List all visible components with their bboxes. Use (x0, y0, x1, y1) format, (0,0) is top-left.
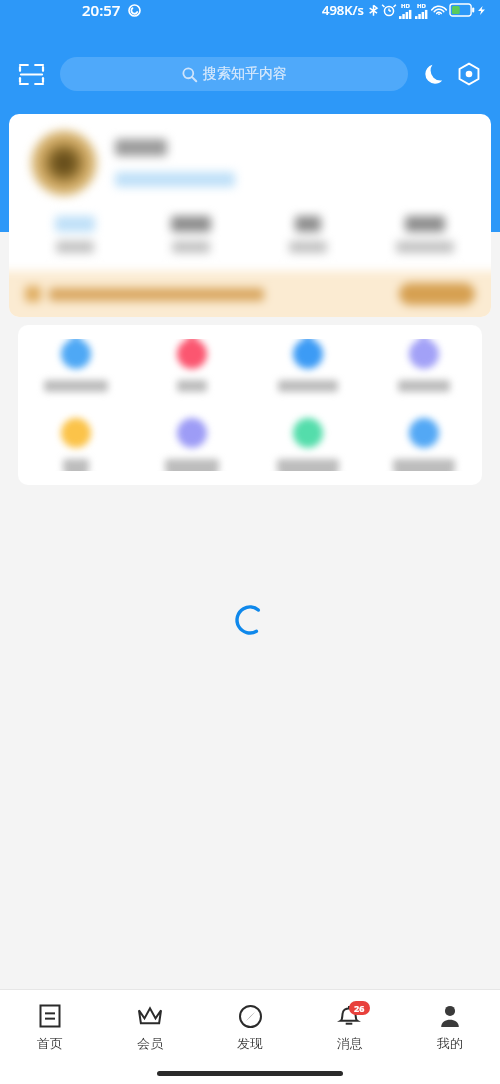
staticText: 20:57 (82, 0, 121, 20)
staticText: 消息 (337, 1035, 363, 1051)
button[interactable] (134, 418, 250, 471)
button[interactable]: 会员 (100, 1002, 200, 1051)
staticText: 会员 (137, 1035, 163, 1051)
staticText: 发现 (237, 1035, 263, 1051)
button[interactable] (366, 216, 483, 253)
staticText: 搜索知乎内容 (203, 65, 287, 83)
button[interactable]: Scan (14, 57, 48, 91)
button[interactable] (18, 418, 134, 471)
button[interactable]: Night mode (418, 57, 452, 91)
button[interactable] (17, 216, 133, 253)
button[interactable]: 26 (300, 1002, 400, 1051)
button[interactable] (366, 339, 482, 392)
staticText: 首页 (37, 1035, 63, 1051)
button[interactable]: 我的 (400, 1002, 500, 1051)
staticText: 498K/s (322, 1, 364, 19)
button[interactable]: 搜索知乎内容 (60, 57, 408, 91)
staticText: HD (401, 2, 410, 10)
button[interactable] (250, 418, 366, 471)
button[interactable] (366, 418, 482, 471)
button[interactable]: Settings (452, 57, 486, 91)
button[interactable]: 发现 (200, 1002, 300, 1051)
staticText: 26 (354, 1002, 365, 1014)
staticText: 我的 (437, 1035, 463, 1051)
button[interactable] (134, 339, 250, 392)
button[interactable]: 首页 (0, 1002, 100, 1051)
button[interactable] (250, 339, 366, 392)
button[interactable] (18, 339, 134, 392)
staticText: HD (417, 2, 426, 10)
button[interactable] (9, 114, 491, 317)
button[interactable] (133, 216, 249, 253)
button[interactable] (249, 216, 366, 253)
